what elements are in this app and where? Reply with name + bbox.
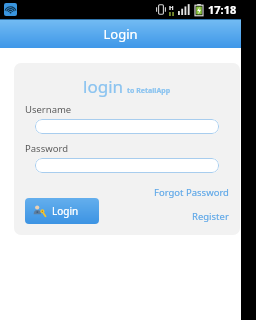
staticText: Login [52, 204, 79, 218]
staticText: Password [25, 142, 68, 155]
button[interactable]: Register [192, 209, 229, 224]
button[interactable]: Username input [35, 119, 219, 134]
staticText: login [83, 75, 124, 98]
staticText: Username [25, 103, 72, 116]
staticText: H [169, 4, 174, 12]
button[interactable]: Forgot Password [154, 185, 229, 200]
button[interactable]: Login [25, 198, 99, 224]
staticText: 17:18 [208, 2, 237, 17]
button[interactable]: Password input [35, 158, 219, 173]
staticText: Login [103, 25, 138, 43]
staticText: to RetailApp [127, 86, 171, 96]
